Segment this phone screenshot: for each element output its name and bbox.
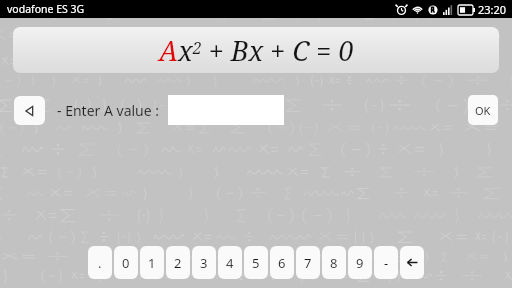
button[interactable]: 5 — [244, 246, 268, 279]
staticText: . — [98, 254, 102, 272]
staticText: 8 — [330, 254, 338, 272]
staticText: 6 — [278, 254, 286, 272]
button[interactable]: 6 — [270, 246, 294, 279]
button[interactable]: 3 — [192, 246, 216, 279]
button[interactable]: 8 — [322, 246, 346, 279]
staticText: 23:20 — [478, 2, 507, 17]
button[interactable]: 0 — [114, 246, 138, 279]
button[interactable]: 1 — [140, 246, 164, 279]
staticText: OK — [475, 103, 491, 118]
button[interactable]: . — [88, 246, 112, 279]
staticText: 7 — [304, 254, 312, 272]
button[interactable]: - — [374, 246, 398, 279]
button[interactable]: 4 — [218, 246, 242, 279]
button[interactable]: 9 — [348, 246, 372, 279]
button[interactable]: 2 — [166, 246, 190, 279]
staticText: 0 — [122, 254, 130, 272]
staticText: vodafone ES 3G — [7, 2, 85, 16]
button[interactable]: OK — [468, 95, 498, 125]
staticText: 4 — [226, 254, 234, 272]
staticText: Ax2 + Bx + C = 0 — [159, 32, 354, 69]
staticText: - — [384, 254, 389, 272]
staticText: 9 — [356, 254, 364, 272]
staticText: 2 — [174, 254, 182, 272]
staticText: 1 — [148, 254, 156, 272]
staticText: 3 — [200, 254, 208, 272]
button[interactable]: Speak — [14, 96, 45, 125]
button[interactable]: Backspace — [400, 246, 424, 279]
staticText: 5 — [252, 254, 260, 272]
button[interactable]: 7 — [296, 246, 320, 279]
staticText: - Enter A value : — [57, 101, 160, 120]
